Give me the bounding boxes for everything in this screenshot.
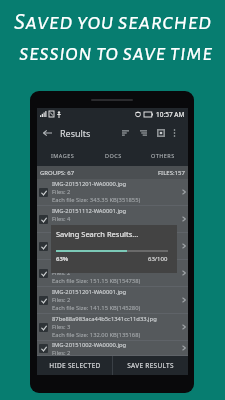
staticText: Each file Size: 151.15 KB(154738) <box>52 277 141 285</box>
button[interactable]: HIDE SELECTED <box>37 356 112 375</box>
button[interactable]: Select all <box>153 125 169 141</box>
staticText: GROUPS: 67 <box>40 169 75 177</box>
button[interactable]: DOCS <box>88 145 138 166</box>
staticText: Each file Size: 141.15 KB(145280) <box>52 304 141 312</box>
button[interactable]: IMG-20151201-WA0002.jpg <box>37 260 188 287</box>
staticText: DOCS <box>105 152 122 159</box>
staticText: SAVE RESULTS <box>127 361 174 370</box>
staticText: IMG-20151112-WA0001.jpg <box>52 207 127 215</box>
staticText: HIDE SELECTED <box>49 361 101 370</box>
staticText: Files: 2 <box>52 188 71 196</box>
button[interactable]: Sort <box>117 125 133 141</box>
staticText: Each file Size: 245.55 KB(251431) <box>52 223 141 231</box>
staticText: Files: 4 <box>52 215 71 223</box>
button[interactable]: IMG-20151112-WA0001.jpg <box>37 206 188 233</box>
button[interactable]: Back <box>39 125 55 141</box>
staticText: 63% <box>56 255 69 263</box>
staticText: 63/100 <box>148 255 168 263</box>
staticText: session to save time <box>19 41 213 65</box>
staticText: Saving Search Results... <box>56 229 139 239</box>
staticText: IMG-20151111-WA0003.jpg <box>52 234 127 242</box>
staticText: 10:57 AM <box>156 110 185 119</box>
staticText: Each file Size: 152.16 KB(157095) <box>52 250 141 258</box>
button[interactable]: IMG-20151201-WA0001.jpg <box>37 287 188 314</box>
staticText: IMG-20151002-WA0000.jpg <box>52 341 127 349</box>
staticText: Files: 2 <box>52 349 71 355</box>
staticText: Saved you searched <box>14 10 212 34</box>
button[interactable]: IMG-20151111-WA0003.jpg <box>37 233 188 260</box>
button[interactable]: More options <box>169 127 180 138</box>
button[interactable]: Filter <box>135 125 151 141</box>
staticText: Files: 3 <box>52 323 71 331</box>
button[interactable]: IMAGES <box>37 145 88 166</box>
staticText: Each file Size: 343.35 KB(351855) <box>52 196 141 204</box>
button[interactable]: IMG-20151201-WA0000.jpg <box>37 179 188 206</box>
button[interactable]: OTHERS <box>138 145 188 166</box>
button[interactable]: SAVE RESULTS <box>113 356 188 375</box>
staticText: FILES:157 <box>158 169 185 177</box>
button[interactable]: IMG-20151002-WA0000.jpg <box>37 341 188 356</box>
staticText: IMAGES <box>51 152 75 159</box>
staticText: OTHERS <box>151 152 175 159</box>
staticText: Files: 2 <box>52 296 71 304</box>
button[interactable]: 87be88a983aca44b5c1341cc11d33.jpg <box>37 314 188 341</box>
staticText: IMG-20151201-WA0001.jpg <box>52 288 127 296</box>
staticText: Files: 2 <box>52 269 71 277</box>
staticText: 87be88a983aca44b5c1341cc11d33.jpg <box>52 315 157 323</box>
staticText: Results <box>60 127 91 139</box>
staticText: Each file Size: 132.00 KB(135168) <box>52 331 141 339</box>
staticText: IMG-20151201-WA0000.jpg <box>52 180 127 188</box>
